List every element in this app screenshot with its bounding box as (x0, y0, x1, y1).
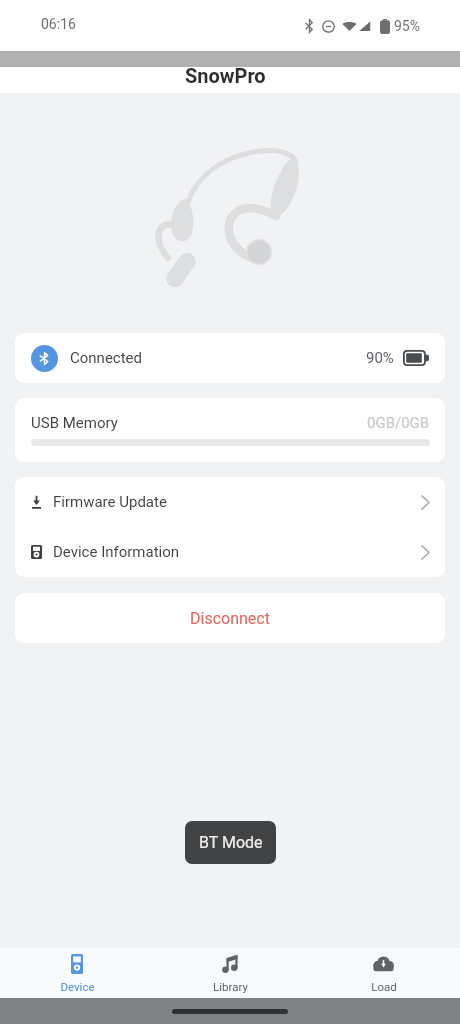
staticText: 95% (394, 18, 420, 34)
staticText: Disconnect (190, 609, 270, 628)
button[interactable]: Load (307, 948, 460, 998)
staticText: 06:16 (41, 16, 76, 32)
staticText: Firmware Update (53, 493, 167, 511)
staticText: SnowPro (185, 64, 266, 87)
staticText: 0GB/0GB (367, 414, 430, 432)
button[interactable]: Firmware Update (15, 477, 445, 527)
button[interactable]: Device (0, 948, 154, 998)
staticText: 90% (366, 349, 394, 367)
button[interactable]: BT Mode (185, 821, 276, 864)
staticText: Connected (70, 349, 143, 367)
button[interactable]: Device Information (15, 527, 445, 577)
button[interactable]: Library (154, 948, 307, 998)
button[interactable]: Disconnect (15, 593, 445, 643)
staticText: Library (213, 980, 248, 993)
staticText: Device Information (53, 543, 180, 561)
staticText: USB Memory (31, 414, 118, 432)
button[interactable]: Connected (15, 333, 445, 383)
staticText: Device (60, 980, 95, 993)
staticText: BT Mode (199, 833, 263, 852)
staticText: Load (371, 980, 397, 993)
